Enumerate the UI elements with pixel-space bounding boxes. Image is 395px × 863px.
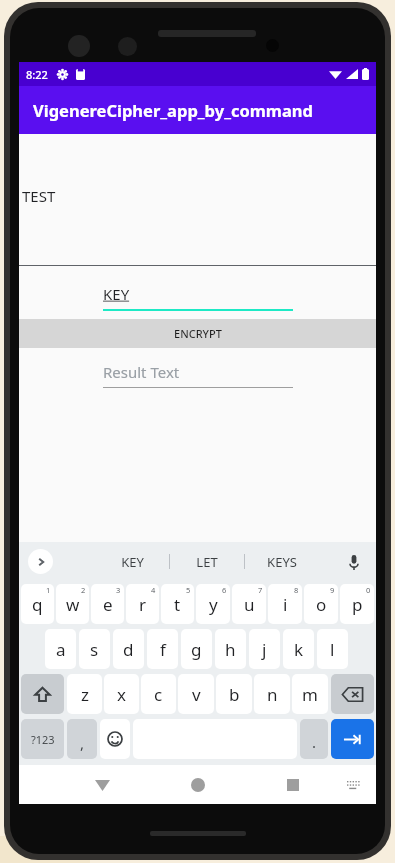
staticText: z (81, 683, 89, 706)
staticText: m (302, 683, 318, 706)
button[interactable]: h (215, 629, 246, 669)
button[interactable]: Home (181, 768, 215, 802)
staticText: f (160, 638, 166, 661)
staticText: ?123 (31, 732, 55, 747)
button[interactable]: j (249, 629, 280, 669)
staticText: 2 (81, 585, 86, 595)
staticText: 4 (151, 585, 156, 595)
button[interactable]: Backspace (331, 674, 374, 714)
staticText: d (123, 638, 134, 661)
staticText: VigenereCipher_app_by_command (33, 99, 313, 121)
staticText: h (225, 638, 236, 661)
staticText: k (294, 638, 304, 661)
button[interactable]: p (340, 584, 374, 624)
button[interactable]: s (79, 629, 110, 669)
staticText: v (192, 683, 201, 706)
staticText: u (244, 593, 255, 616)
button[interactable]: VigenereCipher_app_by_command (19, 86, 376, 134)
staticText: s (90, 638, 99, 661)
staticText: 3 (116, 585, 121, 595)
staticText: . (312, 732, 317, 752)
button[interactable]: g (181, 629, 212, 669)
staticText: LET (196, 553, 218, 571)
staticText: 1 (46, 585, 51, 595)
button[interactable]: i (268, 584, 302, 624)
staticText: q (32, 593, 43, 616)
staticText: b (229, 683, 240, 706)
staticText: j (262, 638, 267, 661)
staticText: TEST (22, 186, 56, 206)
button[interactable]: u (232, 584, 266, 624)
button[interactable]: z (67, 674, 102, 714)
button[interactable]: Emoji (100, 719, 130, 759)
staticText: , (80, 733, 85, 753)
staticText: 7 (258, 585, 263, 595)
staticText: KEY (103, 284, 130, 304)
staticText: g (191, 638, 202, 661)
staticText: c (154, 683, 163, 706)
button[interactable]: More suggestions (28, 549, 53, 574)
button[interactable]: m (292, 674, 328, 714)
button[interactable]: k (283, 629, 314, 669)
button[interactable]: n (254, 674, 290, 714)
button[interactable]: ?123 (21, 719, 64, 759)
button[interactable]: w (56, 584, 89, 624)
button[interactable]: . (300, 719, 328, 759)
staticText: ENCRYPT (174, 326, 222, 341)
button[interactable]: r (126, 584, 159, 624)
staticText: t (174, 593, 181, 616)
staticText: KEY (121, 553, 144, 571)
staticText: 9 (330, 585, 335, 595)
staticText: 8 (294, 585, 299, 595)
button[interactable]: ENCRYPT (19, 319, 376, 348)
button[interactable]: KEYS (245, 542, 319, 581)
staticText: Result Text (103, 362, 180, 382)
button[interactable]: y (196, 584, 230, 624)
button[interactable]: l (317, 629, 348, 669)
staticText: w (66, 593, 80, 616)
button[interactable]: e (91, 584, 124, 624)
button[interactable]: x (104, 674, 139, 714)
button[interactable]: t (161, 584, 194, 624)
staticText: p (352, 593, 363, 616)
button[interactable]: Back (85, 768, 119, 802)
staticText: x (117, 683, 126, 706)
staticText: 0 (366, 585, 371, 595)
staticText: i (283, 593, 288, 616)
button[interactable]: o (304, 584, 338, 624)
staticText: a (56, 638, 66, 661)
staticText: r (139, 593, 147, 616)
button[interactable]: q (21, 584, 54, 624)
button[interactable]: c (141, 674, 176, 714)
staticText: 6 (222, 585, 227, 595)
button[interactable]: Result Text (19, 360, 376, 390)
button[interactable]: Next (331, 719, 374, 759)
button[interactable]: KEY (19, 280, 376, 314)
staticText: 8:22 (26, 67, 48, 82)
button[interactable]: d (113, 629, 144, 669)
button[interactable]: v (178, 674, 214, 714)
button[interactable]: Shift (21, 674, 64, 714)
staticText: l (330, 638, 335, 661)
button[interactable]: Recents (276, 768, 310, 802)
button[interactable]: , (67, 719, 97, 759)
staticText: n (267, 683, 278, 706)
button[interactable]: LET (170, 542, 244, 581)
staticText: KEYS (267, 553, 297, 571)
button[interactable]: f (147, 629, 178, 669)
staticText: e (103, 593, 113, 616)
staticText: 5 (186, 585, 191, 595)
staticText: o (316, 593, 327, 616)
button[interactable]: Switch keyboard (341, 772, 367, 798)
button[interactable]: b (216, 674, 252, 714)
staticText: y (209, 593, 218, 616)
button[interactable]: a (45, 629, 76, 669)
button[interactable]: Voice input (342, 550, 366, 574)
button[interactable]: KEY (95, 542, 169, 581)
